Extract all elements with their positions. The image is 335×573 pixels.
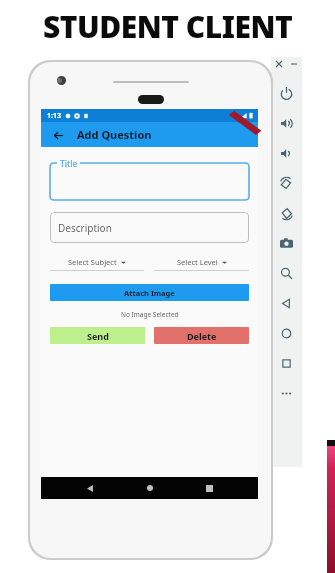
button[interactable]: Back <box>271 288 302 318</box>
button[interactable]: Delete <box>154 327 249 344</box>
button[interactable]: Screenshot <box>271 228 302 258</box>
button[interactable]: Send <box>50 327 145 344</box>
button[interactable]: Home <box>271 318 302 348</box>
button[interactable]: Volume up <box>271 108 302 138</box>
button[interactable]: Back <box>80 478 100 498</box>
button[interactable]: Home <box>140 478 160 498</box>
button[interactable] <box>50 158 249 200</box>
staticText: 1:13 <box>47 111 61 121</box>
button[interactable]: Rotate right <box>271 198 302 228</box>
button[interactable]: Overview <box>271 348 302 378</box>
button[interactable]: More <box>271 378 302 408</box>
button[interactable]: Minimize <box>291 61 297 67</box>
staticText: Delete <box>187 330 217 342</box>
staticText: Description <box>58 221 112 235</box>
button[interactable]: Select Level <box>154 257 249 271</box>
staticText: Add Question <box>77 127 152 142</box>
staticText: No Image Selected <box>121 310 179 319</box>
button[interactable]: Recents <box>199 478 219 498</box>
button[interactable]: Close <box>276 61 282 67</box>
button[interactable]: Select Subject <box>50 257 144 271</box>
staticText: Select Level <box>177 257 218 267</box>
button[interactable]: Back <box>50 127 66 143</box>
staticText: Title <box>60 158 78 170</box>
button[interactable]: Power <box>271 78 302 108</box>
button[interactable]: Description <box>50 212 249 243</box>
staticText: Select Subject <box>68 257 117 267</box>
staticText: Send <box>87 330 109 342</box>
button[interactable]: Attach Image <box>50 284 249 301</box>
staticText: Attach Image <box>124 288 175 298</box>
staticText: STUDENT CLIENT <box>43 6 293 47</box>
button[interactable]: Rotate left <box>271 168 302 198</box>
button[interactable]: Zoom <box>271 258 302 288</box>
button[interactable]: Volume down <box>271 138 302 168</box>
